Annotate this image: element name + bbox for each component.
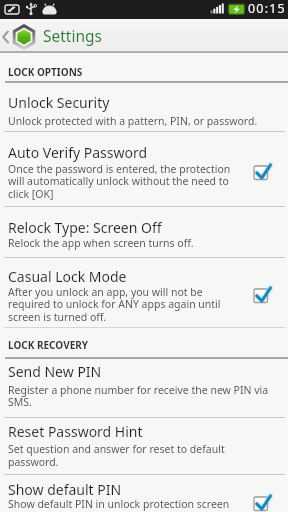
staticText: Settings bbox=[43, 25, 102, 46]
staticText: Casual Lock Mode bbox=[8, 267, 127, 286]
staticText: After you unlock an app, you will not be bbox=[8, 285, 203, 299]
staticText: click [OK] bbox=[8, 187, 54, 201]
button[interactable]: Relock Type: Screen Off bbox=[0, 207, 288, 257]
button[interactable]: Unlock Security bbox=[0, 82, 288, 131]
staticText: Auto Verify Password bbox=[8, 143, 148, 162]
staticText: Send New PIN bbox=[8, 362, 102, 381]
staticText: Relock the app when screen turns off. bbox=[8, 236, 194, 250]
staticText: required to unlock for ANY apps again un… bbox=[8, 297, 221, 311]
staticText: Show default PIN bbox=[8, 480, 122, 499]
staticText: password. bbox=[8, 455, 59, 469]
staticText: Show default PIN in unlock protection sc… bbox=[8, 497, 230, 511]
staticText: 00:15 bbox=[248, 0, 286, 17]
staticText: Once the password is entered, the protec… bbox=[8, 162, 231, 176]
staticText: will automatically unlock without the ne… bbox=[8, 174, 229, 188]
button[interactable]: Send New PIN bbox=[0, 358, 288, 417]
staticText: Unlock Security bbox=[8, 93, 110, 112]
button[interactable]: Show default PIN bbox=[0, 475, 288, 512]
staticText: LOCK OPTIONS bbox=[8, 65, 83, 79]
staticText: SMS. bbox=[8, 395, 32, 409]
staticText: Unlock protected with a pattern, PIN, or… bbox=[8, 114, 258, 128]
button[interactable]: Reset Password Hint bbox=[0, 418, 288, 474]
staticText: Reset Password Hint bbox=[8, 422, 143, 441]
staticText: Relock Type: Screen Off bbox=[8, 218, 162, 237]
button[interactable]: Casual Lock Mode bbox=[0, 258, 288, 327]
staticText: Register a phone number for receive the … bbox=[8, 383, 269, 397]
button[interactable]: Auto Verify Password bbox=[0, 132, 288, 206]
button[interactable]: Settings bbox=[0, 19, 288, 53]
staticText: LOCK RECOVERY bbox=[8, 338, 89, 352]
staticText: screen is turned off. bbox=[8, 310, 107, 324]
staticText: Set question and answer for reset to def… bbox=[8, 442, 225, 456]
